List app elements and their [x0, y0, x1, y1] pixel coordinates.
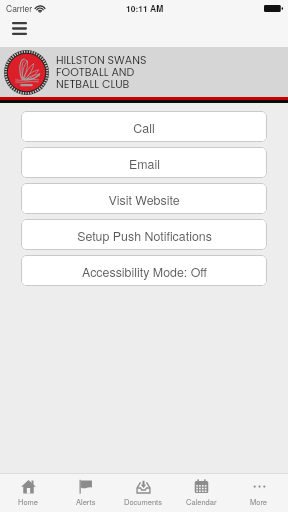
staticText: Documents — [124, 496, 162, 507]
button[interactable]: Call — [21, 111, 267, 142]
button[interactable]: Alerts — [57, 474, 114, 512]
staticText: FOOTBALL AND — [56, 64, 135, 76]
staticText: 10:11 AM — [126, 2, 164, 14]
staticText: Setup Push Notifications — [77, 227, 212, 245]
staticText: Carrier — [6, 2, 32, 14]
button[interactable]: Calendar — [172, 474, 230, 512]
staticText: Call — [133, 119, 155, 137]
button[interactable]: Email — [21, 147, 267, 178]
button[interactable]: More — [230, 474, 288, 512]
staticText: Accessibility Mode: Off — [82, 263, 207, 281]
staticText: Email — [129, 155, 160, 173]
staticText: More — [250, 496, 268, 507]
button[interactable]: Accessibility Mode: Off — [21, 255, 267, 286]
button[interactable]: Visit Website — [21, 183, 267, 214]
staticText: Calendar — [186, 496, 217, 507]
button[interactable]: Setup Push Notifications — [21, 219, 267, 250]
button[interactable]: Documents — [114, 474, 172, 512]
staticText: HILLSTON SWANS — [56, 52, 147, 64]
staticText: Home — [18, 496, 39, 507]
staticText: Visit Website — [108, 191, 180, 209]
button[interactable]: Home — [0, 474, 57, 512]
staticText: Alerts — [76, 496, 96, 507]
button[interactable]: Menu — [0, 18, 38, 47]
staticText: NETBALL CLUB — [56, 76, 130, 88]
